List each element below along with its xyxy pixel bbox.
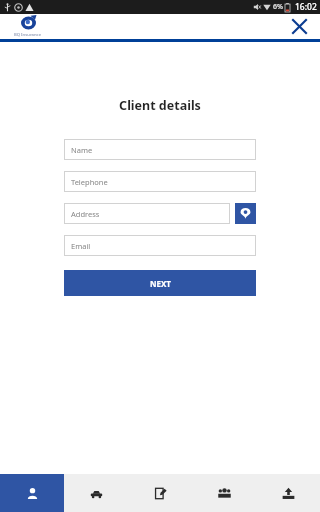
- button[interactable]: Client: [0, 474, 64, 512]
- button[interactable]: Vehicle: [64, 474, 128, 512]
- button[interactable]: Close: [286, 14, 312, 39]
- staticText: Name: [71, 145, 93, 155]
- staticText: NEXT: [150, 278, 171, 289]
- button[interactable]: Pick location: [235, 203, 256, 224]
- button[interactable]: Telephone: [64, 171, 256, 192]
- staticText: Client details: [0, 97, 320, 114]
- button[interactable]: Address: [64, 203, 230, 224]
- staticText: 16:02: [295, 1, 317, 13]
- button[interactable]: Witnesses: [192, 474, 256, 512]
- button[interactable]: Report: [128, 474, 192, 512]
- staticText: BQ Insurance: [14, 32, 42, 38]
- button[interactable]: Name: [64, 139, 256, 160]
- staticText: Email: [71, 241, 91, 251]
- button[interactable]: Email: [64, 235, 256, 256]
- staticText: 6%: [273, 2, 283, 12]
- staticText: Telephone: [71, 177, 108, 187]
- button[interactable]: Upload: [256, 474, 320, 512]
- staticText: Address: [71, 209, 100, 219]
- button[interactable]: NEXT: [64, 270, 256, 296]
